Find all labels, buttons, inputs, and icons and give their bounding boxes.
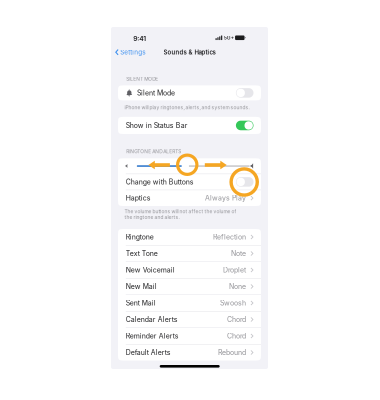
- staticText: 9:41: [133, 34, 146, 43]
- staticText: Haptics: [126, 194, 151, 202]
- staticText: Sounds & Haptics: [163, 49, 215, 56]
- staticText: Settings: [120, 48, 145, 56]
- staticText: Calendar Alerts: [126, 315, 178, 324]
- staticText: Sent Mail: [126, 299, 156, 307]
- staticText: Text Tone: [126, 249, 158, 258]
- staticText: New Voicemail: [126, 266, 175, 274]
- staticText: Chord: [227, 332, 246, 340]
- button[interactable]: Calendar Alerts: [118, 311, 261, 327]
- staticText: Rebound: [218, 348, 246, 357]
- staticText: 5G+: [224, 35, 234, 41]
- button[interactable]: Reminder Alerts: [118, 328, 261, 344]
- button[interactable]: Sent Mail: [118, 295, 261, 311]
- button[interactable]: Settings: [111, 46, 149, 59]
- button[interactable]: Text Tone: [118, 245, 261, 261]
- button[interactable]: New Voicemail: [118, 262, 261, 278]
- button[interactable]: Ringtone: [118, 229, 261, 245]
- button[interactable]: Silent Mode: [118, 85, 261, 100]
- staticText: Change with Buttons: [126, 178, 194, 186]
- staticText: SILENT MODE: [126, 76, 158, 82]
- staticText: The volume buttons will not affect the v…: [124, 209, 236, 220]
- staticText: Reflection: [213, 233, 246, 241]
- staticText: iPhone will play ringtones, alerts, and …: [124, 105, 249, 110]
- staticText: Chord: [227, 315, 246, 324]
- staticText: Always Play: [205, 194, 246, 202]
- staticText: New Mail: [126, 282, 157, 291]
- staticText: None: [229, 282, 246, 291]
- staticText: Droplet: [223, 266, 246, 274]
- button[interactable]: New Mail: [118, 278, 261, 294]
- staticText: Note: [231, 249, 246, 258]
- staticText: Reminder Alerts: [126, 332, 179, 340]
- button[interactable]: Default Alerts: [118, 344, 261, 360]
- staticText: Default Alerts: [126, 348, 171, 357]
- staticText: RINGTONE AND ALERTS: [126, 149, 181, 154]
- button[interactable]: Change with Buttons: [118, 174, 261, 190]
- button[interactable]: Show in Status Bar: [118, 117, 261, 134]
- staticText: Swoosh: [220, 299, 246, 307]
- staticText: Show in Status Bar: [126, 121, 188, 130]
- button[interactable]: Haptics: [118, 190, 261, 206]
- staticText: Ringtone: [126, 233, 154, 241]
- staticText: Silent Mode: [137, 89, 175, 97]
